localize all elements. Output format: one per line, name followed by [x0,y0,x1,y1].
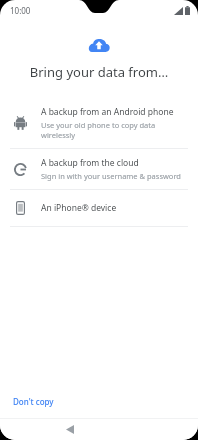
staticText: An iPhone® device [41,202,117,214]
button[interactable]: Don't copy [8,392,59,411]
staticText: A backup from an Android phone [41,106,174,118]
staticText: Don't copy [13,396,54,407]
button[interactable]: An iPhone® device [0,190,198,226]
staticText: Sign in with your username & password [41,171,181,181]
staticText: Use your old phone to copy data wireless… [41,120,186,140]
button[interactable]: Back [61,420,79,439]
staticText: Bring your data from… [10,63,188,81]
staticText: 10:00 [10,5,31,16]
button[interactable]: A backup from the cloud [0,149,198,189]
staticText: A backup from the cloud [41,157,139,169]
button[interactable]: A backup from an Android phone [0,98,198,148]
